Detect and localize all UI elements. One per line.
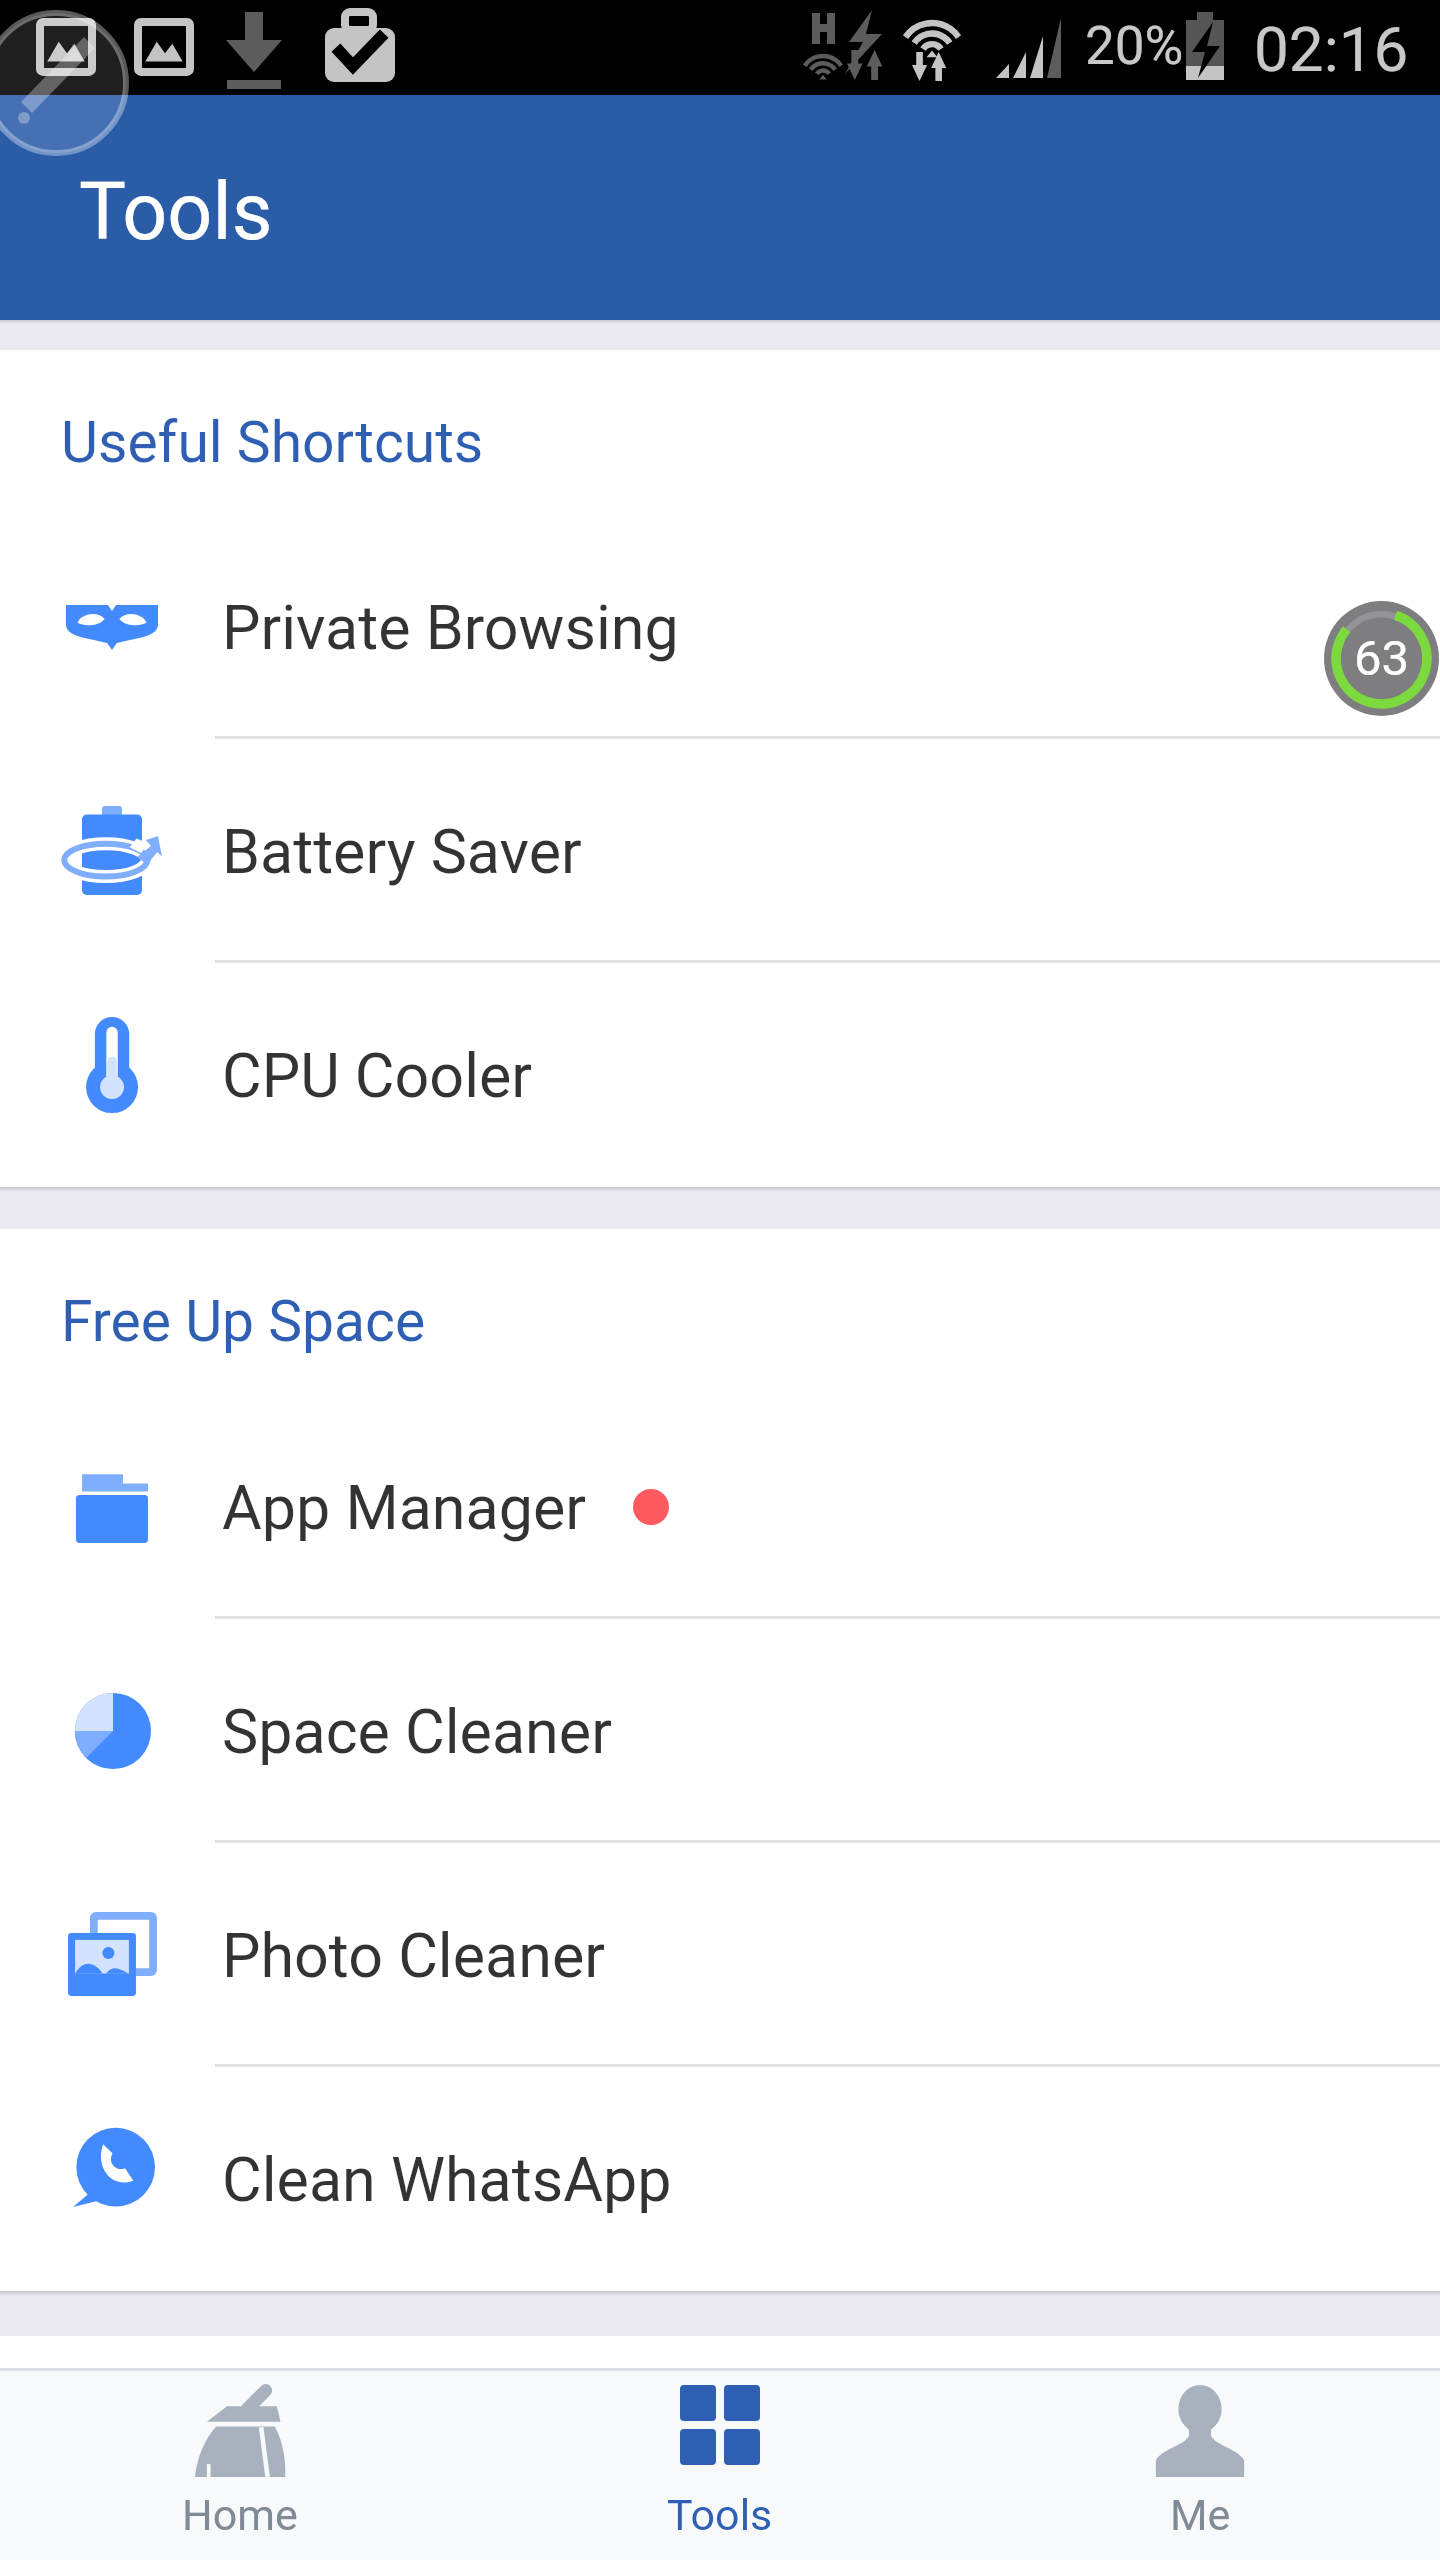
staticText: 02:16: [1254, 13, 1409, 86]
button[interactable]: Tools: [480, 2371, 960, 2560]
button[interactable]: Private Browsing: [0, 515, 1440, 739]
staticText: 20%: [1085, 15, 1184, 77]
staticText: Battery Saver: [222, 816, 582, 887]
staticText: Free Up Space: [61, 1288, 426, 1355]
button[interactable]: Boost memory, 63 percent free: [1324, 601, 1439, 716]
staticText: Me: [1170, 2490, 1231, 2540]
button[interactable]: Clean WhatsApp: [0, 2067, 1440, 2291]
staticText: Tools: [79, 166, 273, 259]
staticText: Private Browsing: [222, 592, 679, 663]
button[interactable]: Photo Cleaner: [0, 1843, 1440, 2067]
staticText: Tools: [667, 2490, 773, 2540]
button[interactable]: Battery Saver: [0, 739, 1440, 963]
button[interactable]: Me: [960, 2371, 1440, 2560]
staticText: Home: [182, 2490, 298, 2540]
staticText: Space Cleaner: [222, 1696, 612, 1767]
button[interactable]: App Manager: [0, 1395, 1440, 1619]
staticText: Useful Shortcuts: [61, 409, 484, 476]
staticText: Photo Cleaner: [222, 1920, 605, 1991]
staticText: Clean WhatsApp: [222, 2144, 672, 2215]
button[interactable]: CPU Cooler: [0, 963, 1440, 1187]
staticText: App Manager: [222, 1472, 587, 1543]
staticText: 63: [1354, 630, 1410, 687]
button[interactable]: Home: [0, 2371, 480, 2560]
staticText: CPU Cooler: [222, 1040, 533, 1111]
button[interactable]: Space Cleaner: [0, 1619, 1440, 1843]
